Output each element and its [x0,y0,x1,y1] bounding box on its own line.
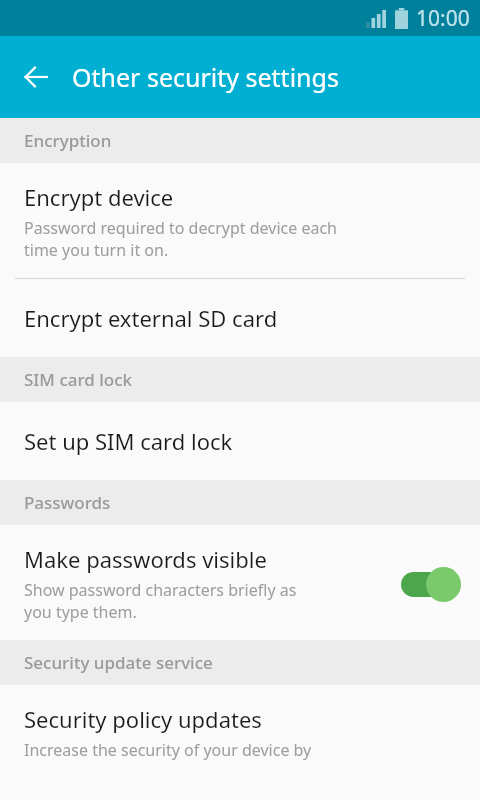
staticText: Encrypt external SD card [24,303,278,333]
staticText: Passwords [24,491,111,514]
other: Battery [395,8,408,29]
staticText: Increase the security of your device by [24,739,312,761]
button[interactable]: Make passwords visible toggle [400,566,462,602]
staticText: Encryption [24,129,112,152]
staticText: Make passwords visible [24,544,267,574]
button[interactable]: Encrypt device [0,163,480,278]
button[interactable]: Back [8,49,64,105]
staticText: Password required to decrypt device each… [24,217,337,261]
staticText: 10:00 [416,4,470,33]
staticText: SIM card lock [24,368,133,391]
other: Signal strength [366,10,386,28]
staticText: Encrypt device [24,182,174,212]
staticText: Show password characters briefly as you … [24,579,297,623]
button[interactable]: Security policy updates [0,685,480,778]
staticText: Other security settings [72,60,339,94]
button[interactable]: Make passwords visible [0,525,480,640]
button[interactable]: Encrypt external SD card [0,279,480,357]
button[interactable]: Set up SIM card lock [0,402,480,480]
staticText: Security update service [24,651,213,674]
staticText: Set up SIM card lock [24,426,233,456]
staticText: Security policy updates [24,704,262,734]
